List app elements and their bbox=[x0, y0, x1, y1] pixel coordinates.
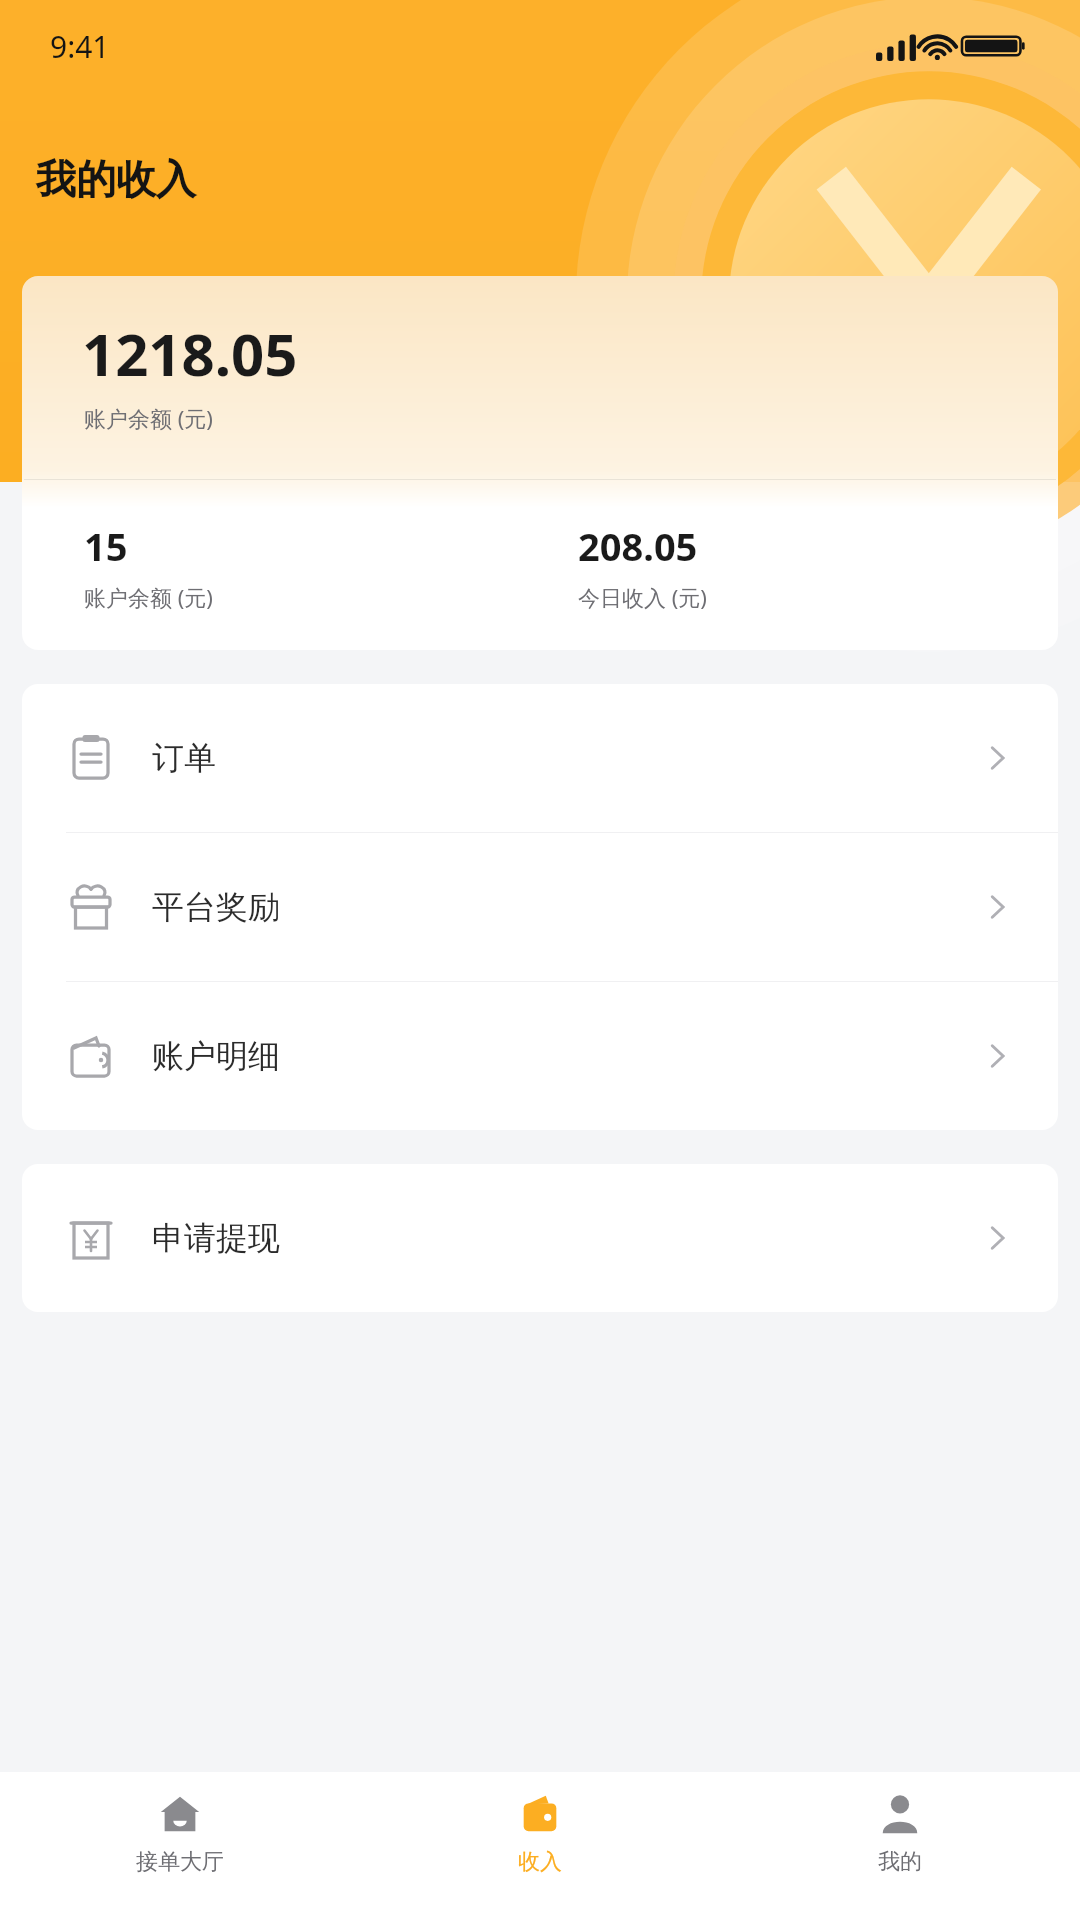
button[interactable]: 接单大厅 bbox=[0, 1772, 360, 1920]
staticText: 申请提现 bbox=[152, 1218, 280, 1258]
button[interactable]: 订单 bbox=[22, 684, 1058, 833]
button[interactable]: 账户明细 bbox=[22, 982, 1058, 1130]
staticText: 9:41 bbox=[50, 26, 110, 67]
staticText: 我的收入 bbox=[36, 154, 196, 204]
staticText: 账户明细 bbox=[152, 1036, 280, 1076]
staticText: 今日收入 (元) bbox=[578, 582, 707, 612]
staticText: 平台奖励 bbox=[152, 887, 280, 927]
staticText: 账户余额 (元) bbox=[84, 582, 213, 612]
button[interactable]: 平台奖励 bbox=[22, 833, 1058, 982]
button[interactable]: 申请提现 bbox=[22, 1164, 1058, 1312]
staticText: 15 bbox=[84, 520, 128, 572]
staticText: 订单 bbox=[152, 738, 216, 778]
staticText: 账户余额 (元) bbox=[84, 403, 213, 433]
staticText: 接单大厅 bbox=[136, 1848, 224, 1876]
staticText: 收入 bbox=[518, 1848, 562, 1876]
staticText: 我的 bbox=[878, 1848, 922, 1876]
staticText: 208.05 bbox=[578, 520, 698, 572]
button[interactable]: 我的 bbox=[720, 1772, 1080, 1920]
button[interactable]: 收入 bbox=[360, 1772, 720, 1920]
staticText: 1218.05 bbox=[82, 314, 298, 393]
